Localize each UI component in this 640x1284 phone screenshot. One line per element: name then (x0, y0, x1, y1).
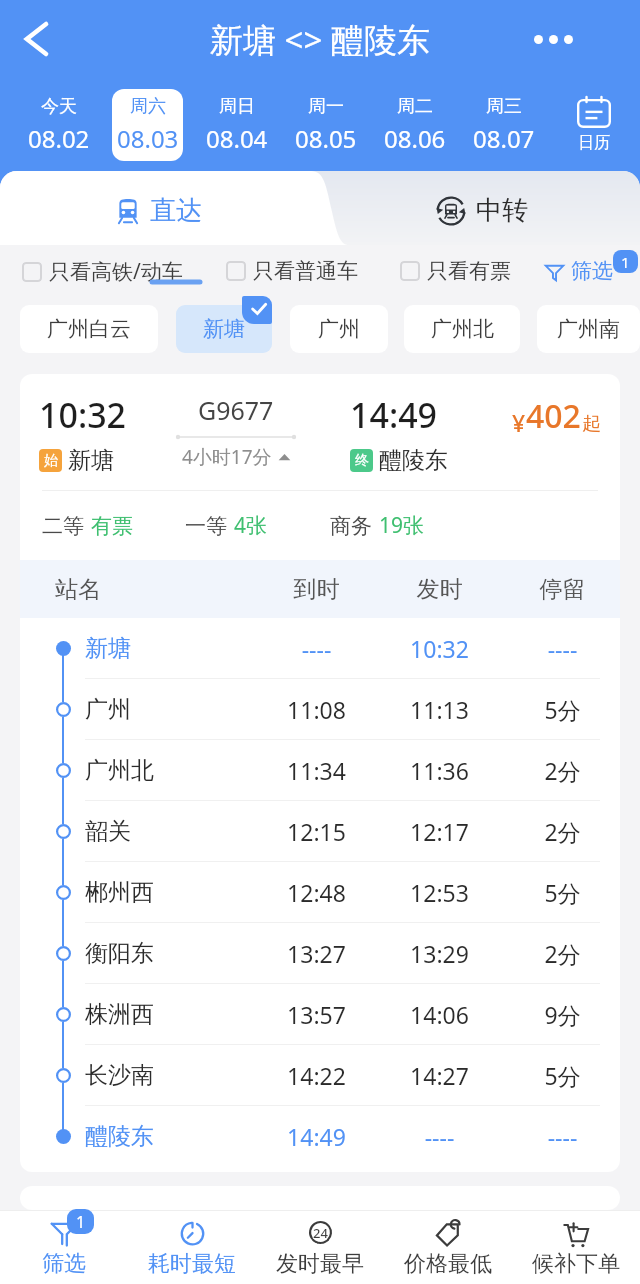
staticText: 14:49 (350, 392, 438, 438)
staticText: 周六 (130, 95, 166, 118)
button[interactable]: 只看普通车 (226, 258, 358, 284)
button[interactable]: 价格最低 (384, 1211, 512, 1284)
staticText: 14:06 (378, 999, 501, 1030)
button[interactable]: 周二 (379, 89, 450, 161)
staticText: 新塘 <> 醴陵东 (210, 17, 430, 62)
staticText: 2分 (501, 755, 620, 786)
staticText: G9677 (198, 393, 274, 427)
staticText: 12:48 (255, 877, 378, 908)
staticText: 发时最早 (276, 1250, 364, 1278)
staticText: 新塘 (68, 446, 114, 475)
staticText: 醴陵东 (379, 446, 448, 475)
staticText: 2分 (501, 938, 620, 969)
staticText: ---- (501, 633, 620, 664)
staticText: 新塘 (203, 316, 245, 342)
staticText: 11:36 (378, 755, 501, 786)
button[interactable]: 筛选 (545, 258, 613, 284)
staticText: 广州南 (557, 316, 620, 342)
button[interactable]: More options (466, 0, 640, 78)
staticText: 价格最低 (404, 1250, 492, 1278)
button[interactable]: 耗时最短 (128, 1211, 256, 1284)
staticText: 筛选 (571, 258, 613, 284)
staticText: 08.02 (28, 122, 90, 155)
staticText: ---- (378, 1121, 501, 1152)
staticText: 周二 (397, 95, 433, 118)
staticText: 停留 (501, 575, 620, 604)
staticText: 周日 (219, 95, 255, 118)
staticText: 长沙南 (85, 1061, 154, 1090)
button[interactable]: 周日 (201, 89, 272, 161)
button[interactable]: 只看有票 (400, 258, 511, 284)
staticText: 24 (313, 1224, 328, 1242)
staticText: 1 (621, 252, 630, 272)
staticText: 始 (44, 452, 58, 470)
staticText: 衡阳东 (85, 939, 154, 968)
staticText: 新塘 (85, 634, 131, 663)
button[interactable]: 中转 (318, 171, 640, 245)
staticText: 终 (355, 452, 369, 470)
staticText: ¥ (512, 407, 526, 438)
button[interactable]: Calendar (548, 78, 640, 171)
staticText: 08.05 (295, 122, 357, 155)
button[interactable]: 24 (256, 1211, 384, 1284)
staticText: 广州白云 (47, 316, 131, 342)
staticText: 13:57 (255, 999, 378, 1030)
button[interactable]: 广州北 (404, 305, 520, 353)
staticText: 周三 (486, 95, 522, 118)
button[interactable]: Back (0, 0, 72, 78)
staticText: 二等 (42, 513, 84, 539)
staticText: 广州北 (85, 756, 154, 785)
staticText: 郴州西 (85, 878, 154, 907)
staticText: 5分 (501, 1060, 620, 1091)
staticText: 08.07 (473, 122, 535, 155)
staticText: 韶关 (85, 817, 131, 846)
staticText: 只看普通车 (253, 258, 358, 284)
button[interactable]: 今天 (23, 89, 94, 161)
button[interactable]: 10:32 (20, 374, 620, 490)
button[interactable]: 1 (0, 1211, 128, 1284)
button[interactable]: 直达 (0, 171, 318, 245)
staticText: 发时 (378, 575, 501, 604)
button[interactable]: 候补下单 (512, 1211, 640, 1284)
staticText: 402 (526, 394, 581, 438)
staticText: 12:15 (255, 816, 378, 847)
staticText: 10:32 (39, 392, 127, 438)
button[interactable]: 广州南 (537, 305, 640, 353)
staticText: 10:32 (378, 633, 501, 664)
staticText: 12:53 (378, 877, 501, 908)
button[interactable]: 周一 (290, 89, 361, 161)
staticText: ---- (255, 633, 378, 664)
button[interactable]: 新塘 (176, 305, 272, 353)
button[interactable]: 周三 (468, 89, 539, 161)
button[interactable]: 广州白云 (20, 305, 158, 353)
staticText: 19张 (379, 511, 425, 540)
staticText: 08.04 (206, 122, 268, 155)
staticText: 4小时17分 (182, 444, 272, 470)
staticText: 一等 (185, 513, 227, 539)
staticText: 广州 (318, 316, 360, 342)
staticText: 株洲西 (85, 1000, 154, 1029)
button[interactable]: 周六 (112, 89, 183, 161)
staticText: 广州 (85, 695, 131, 724)
staticText: 今天 (41, 95, 77, 118)
staticText: 广州北 (431, 316, 494, 342)
staticText: 醴陵东 (85, 1122, 154, 1151)
staticText: ---- (501, 1121, 620, 1152)
button[interactable]: 只看高铁/动车 (22, 257, 183, 286)
staticText: 站名 (55, 575, 101, 604)
staticText: 只看高铁/动车 (49, 257, 183, 286)
staticText: 5分 (501, 877, 620, 908)
button[interactable]: 广州 (290, 305, 388, 353)
staticText: 有票 (91, 513, 133, 539)
staticText: 13:29 (378, 938, 501, 969)
staticText: 13:27 (255, 938, 378, 969)
staticText: 11:13 (378, 694, 501, 725)
staticText: 只看有票 (427, 258, 511, 284)
staticText: 9分 (501, 999, 620, 1030)
staticText: 筛选 (42, 1250, 86, 1278)
staticText: 到时 (255, 575, 378, 604)
staticText: 11:08 (255, 694, 378, 725)
staticText: 08.06 (384, 122, 446, 155)
staticText: 日历 (578, 133, 610, 153)
staticText: 14:49 (255, 1121, 378, 1152)
